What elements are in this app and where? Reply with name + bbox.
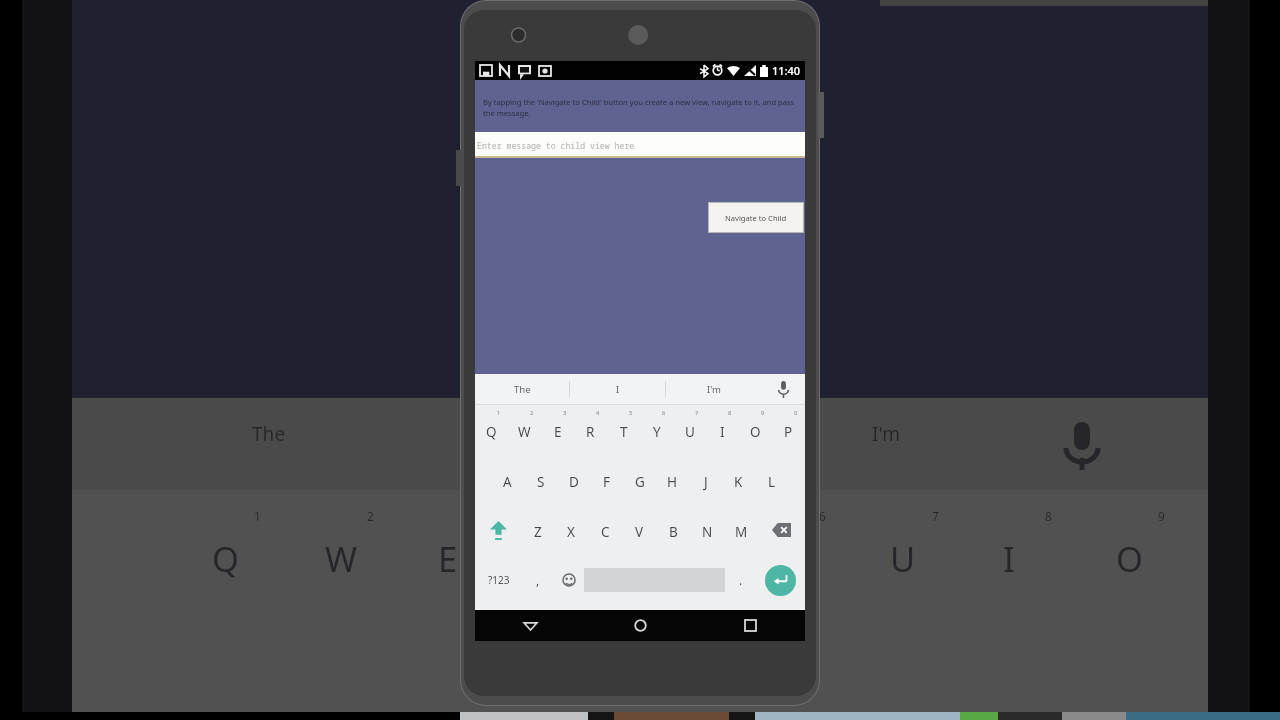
button[interactable]: ?123	[475, 555, 523, 605]
staticText: O	[1116, 535, 1143, 582]
button[interactable]: Recent apps	[695, 610, 805, 641]
staticText: K	[734, 473, 743, 491]
staticText: O	[750, 423, 761, 441]
staticText: 8	[728, 409, 732, 417]
staticText: 1	[254, 508, 261, 524]
staticText: Q	[212, 535, 239, 582]
button[interactable]: 9	[739, 405, 772, 455]
staticText: 6	[662, 409, 666, 417]
button[interactable]: Enter	[765, 565, 796, 596]
staticText: 2	[530, 409, 534, 417]
staticText: 7	[695, 409, 699, 417]
staticText: G	[635, 473, 645, 491]
button[interactable]: 1	[475, 405, 508, 455]
staticText: W	[518, 423, 531, 441]
button[interactable]: 4	[574, 405, 607, 455]
staticText: J	[704, 473, 708, 491]
staticText: 7	[932, 508, 939, 524]
staticText: ,	[536, 572, 540, 588]
button[interactable]: The	[475, 374, 569, 404]
staticText: R	[586, 423, 595, 441]
button[interactable]: C	[588, 505, 622, 555]
staticText: 8	[1045, 508, 1052, 524]
button[interactable]: Navigate to Child	[708, 202, 804, 233]
button[interactable]: M	[724, 505, 758, 555]
button[interactable]: 3	[541, 405, 574, 455]
staticText: I'm	[707, 383, 721, 396]
button[interactable]: Shift	[475, 505, 521, 555]
button[interactable]: 2	[508, 405, 541, 455]
button[interactable]: H	[656, 455, 689, 505]
button[interactable]: 5	[607, 405, 640, 455]
staticText: M	[735, 523, 748, 541]
button[interactable]: Back	[475, 610, 585, 641]
button[interactable]: Enter message to child view here	[475, 132, 805, 158]
button[interactable]: Z	[521, 505, 554, 555]
staticText: I	[1003, 535, 1015, 582]
staticText: 9	[761, 409, 765, 417]
staticText: 9	[1158, 508, 1165, 524]
button[interactable]: J	[689, 455, 722, 505]
staticText: 3	[563, 409, 567, 417]
staticText: I	[616, 383, 620, 396]
button[interactable]: V	[622, 505, 656, 555]
button[interactable]: F	[590, 455, 623, 505]
staticText: Q	[486, 423, 497, 441]
button[interactable]: 6	[640, 405, 673, 455]
staticText: 5	[629, 409, 633, 417]
button[interactable]: 0	[772, 405, 805, 455]
staticText: V	[635, 523, 644, 541]
staticText: U	[685, 423, 695, 441]
staticText: R	[551, 535, 573, 582]
staticText: H	[667, 473, 678, 491]
button[interactable]: 8	[706, 405, 739, 455]
staticText: 11:40	[772, 63, 801, 78]
button[interactable]: I'm	[666, 374, 761, 404]
staticText: .	[739, 572, 743, 588]
staticText: Navigate to Child	[725, 213, 787, 223]
button[interactable]: X	[554, 505, 588, 555]
staticText: W	[325, 535, 358, 582]
button[interactable]: Home	[585, 610, 695, 641]
staticText: Z	[534, 523, 542, 541]
staticText: A	[503, 473, 512, 491]
button[interactable]: Delete	[758, 505, 805, 555]
staticText: T	[664, 535, 684, 582]
staticText: The	[252, 421, 286, 447]
staticText: Y	[777, 535, 797, 582]
staticText: F	[603, 473, 611, 491]
staticText: L	[768, 473, 776, 491]
button[interactable]: S	[524, 455, 557, 505]
staticText: B	[669, 523, 678, 541]
button[interactable]: N	[690, 505, 724, 555]
button[interactable]: I	[570, 374, 665, 404]
staticText: N	[702, 523, 713, 541]
button[interactable]: ,	[523, 555, 553, 605]
button[interactable]: D	[557, 455, 590, 505]
button[interactable]: G	[623, 455, 656, 505]
staticText: C	[601, 523, 610, 541]
button[interactable]: K	[722, 455, 755, 505]
button[interactable]: B	[656, 505, 690, 555]
button[interactable]: L	[755, 455, 788, 505]
staticText: I'm	[872, 421, 901, 447]
staticText: 2	[367, 508, 374, 524]
button[interactable]: .	[725, 555, 756, 605]
button[interactable]: Voice input	[761, 374, 805, 404]
staticText: Y	[653, 423, 661, 441]
button[interactable]: Emoji	[553, 555, 584, 605]
staticText: 4	[596, 409, 600, 417]
button[interactable]: 7	[673, 405, 706, 455]
staticText: Enter message to child view here	[477, 140, 635, 151]
staticText: E	[438, 535, 458, 582]
staticText: S	[537, 473, 545, 491]
staticText: The	[514, 383, 531, 396]
button[interactable]: A	[491, 455, 524, 505]
staticText: I	[720, 423, 725, 441]
